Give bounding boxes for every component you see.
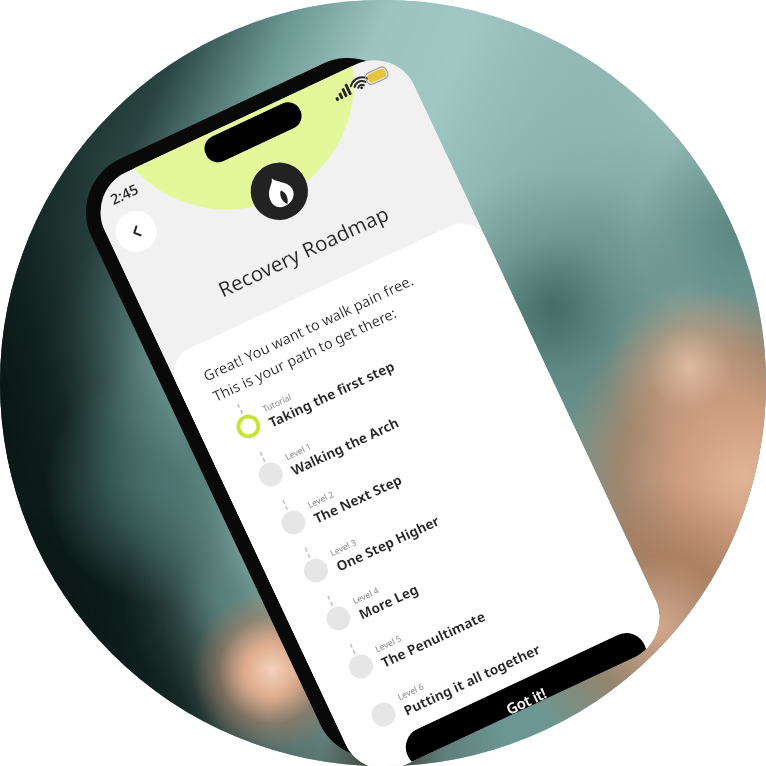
button[interactable]: Got it! (399, 626, 648, 762)
button[interactable]: Level 6 (355, 571, 650, 746)
staticText: Recovery Roadmap (142, 165, 464, 336)
staticText: The Penultimate (378, 607, 488, 672)
staticText: Level 3 (328, 536, 359, 559)
staticText: Putting it all together (401, 639, 543, 720)
staticText: 2:45 (107, 179, 142, 209)
staticText: Level 6 (395, 680, 426, 703)
staticText: Taking the first step (265, 356, 397, 432)
staticText: Great! You want to walk pain free. This … (200, 270, 426, 406)
button[interactable]: Back (109, 204, 163, 259)
staticText: Level 2 (305, 488, 336, 511)
button[interactable]: Level 4 (310, 475, 604, 650)
button[interactable]: Level 3 (288, 427, 582, 602)
button[interactable]: Level 5 (333, 523, 627, 698)
staticText: Level 5 (373, 632, 404, 655)
staticText: Tutorial (260, 391, 293, 415)
staticText: Level 4 (350, 584, 381, 607)
staticText: Walking the Arch (288, 413, 402, 480)
staticText: Got it! (503, 683, 548, 716)
button[interactable]: Level 2 (265, 379, 559, 554)
button[interactable]: Level 1 (243, 331, 537, 506)
staticText: One Step Higher (333, 511, 442, 576)
button[interactable]: Tutorial (220, 283, 514, 458)
staticText: More Leg (356, 579, 422, 624)
staticText: Level 1 (283, 440, 313, 463)
staticText: The Next Step (310, 470, 405, 528)
